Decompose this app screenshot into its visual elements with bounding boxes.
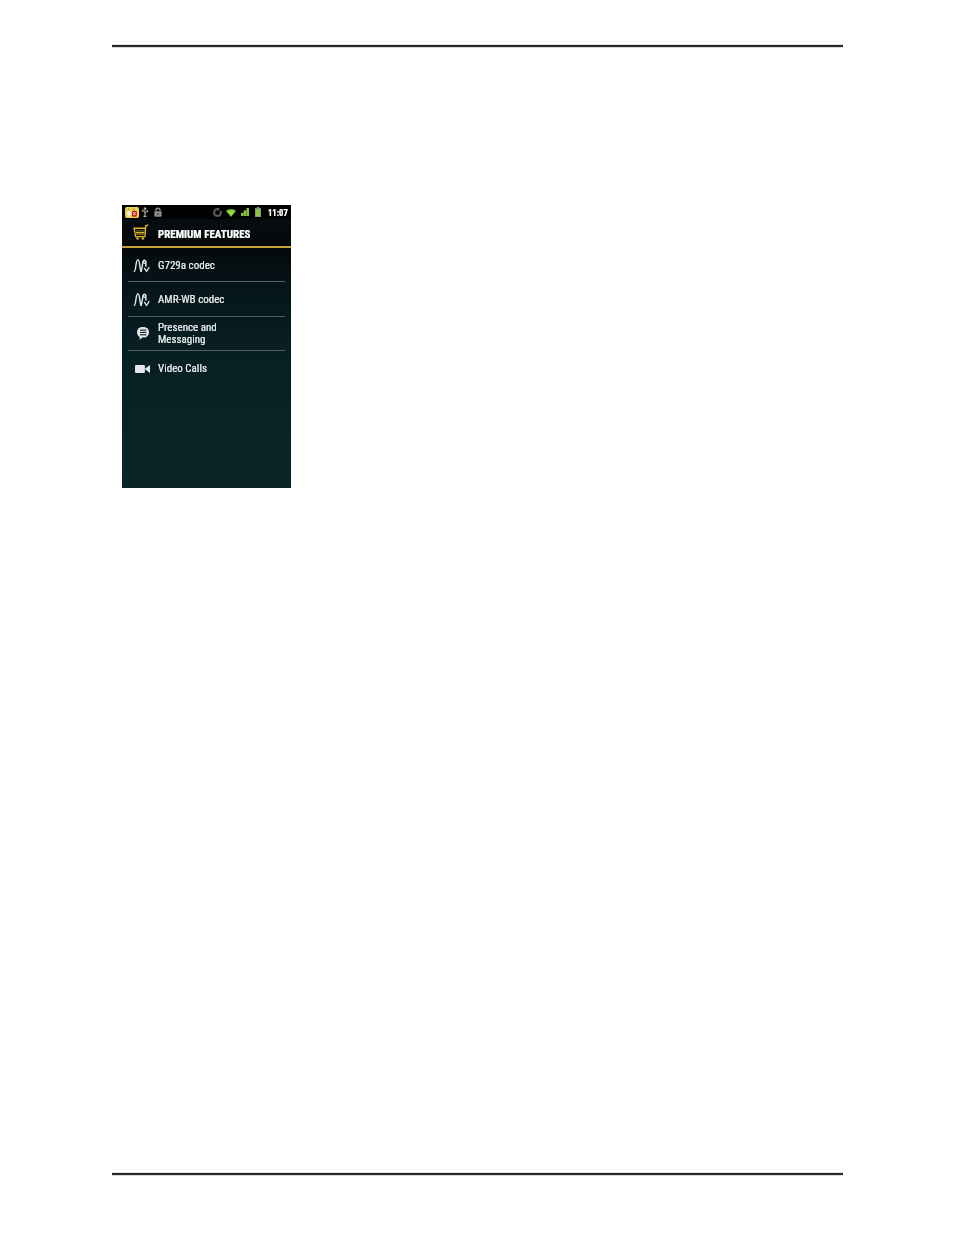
other: Shopping cart xyxy=(133,224,149,241)
button[interactable]: Presence and Messaging xyxy=(122,317,291,350)
staticText: AMR-WB codec xyxy=(158,293,225,306)
staticText: Video Calls xyxy=(158,362,207,375)
button[interactable]: Shopping cart xyxy=(122,219,291,246)
button[interactable]: Video Calls xyxy=(122,351,291,385)
staticText: G729a codec xyxy=(158,259,215,272)
staticText: Presence and Messaging xyxy=(158,321,217,346)
button[interactable]: AMR-WB codec xyxy=(122,282,291,316)
staticText: 11:07 xyxy=(268,208,288,218)
staticText: PREMIUM FEATURES xyxy=(158,228,251,241)
button[interactable]: G729a codec xyxy=(122,249,291,281)
